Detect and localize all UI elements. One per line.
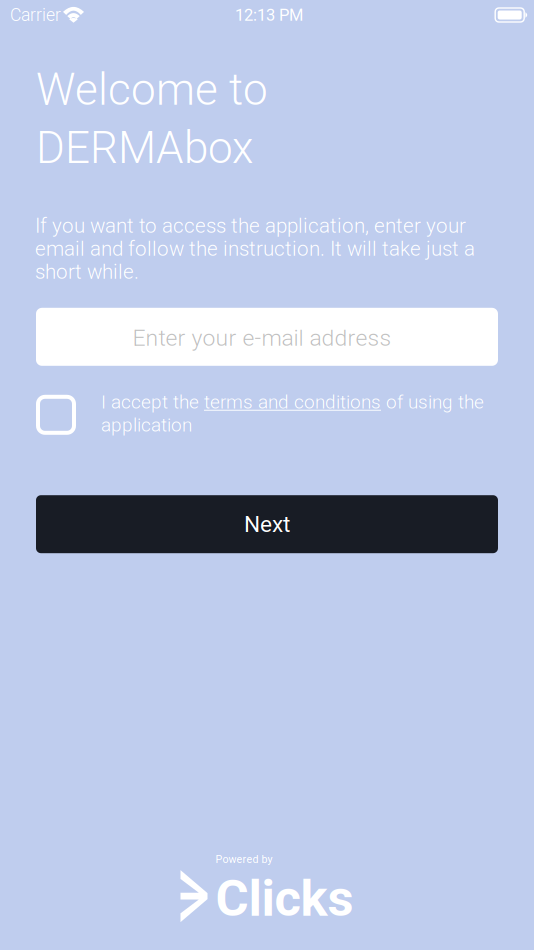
staticText: Welcome to xyxy=(36,64,268,116)
staticText: I accept the terms and conditions of usi… xyxy=(101,391,484,436)
button[interactable]: Enter your e-mail address xyxy=(36,308,498,366)
staticText: Next xyxy=(244,511,290,537)
staticText: Enter your e-mail address xyxy=(132,324,391,351)
staticText: 12:13 PM xyxy=(235,5,303,25)
staticText: If you want to access the application, e… xyxy=(35,214,475,284)
staticText: Carrier xyxy=(10,5,61,25)
staticText: Powered by xyxy=(215,853,272,866)
button[interactable]: Next xyxy=(36,495,498,553)
staticText: DERMAbox xyxy=(36,122,253,174)
button[interactable]: I accept the terms and conditions of usi… xyxy=(36,395,498,440)
staticText: Clicks xyxy=(215,869,353,928)
